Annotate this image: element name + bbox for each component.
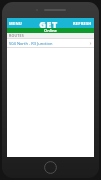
staticText: Online [44, 28, 57, 33]
button[interactable]: Home [44, 161, 57, 174]
staticText: 504 North - R3 Junction [9, 41, 53, 46]
staticText: REFRESH [73, 21, 92, 26]
staticText: GET [39, 18, 58, 28]
staticText: ROUTES [9, 33, 24, 38]
button[interactable]: MENU [7, 20, 25, 27]
staticText: MENU [9, 21, 23, 26]
button[interactable]: REFRESH [71, 20, 94, 27]
other: Open route [89, 42, 92, 45]
button[interactable]: 504 North - R3 Junction [7, 39, 94, 47]
